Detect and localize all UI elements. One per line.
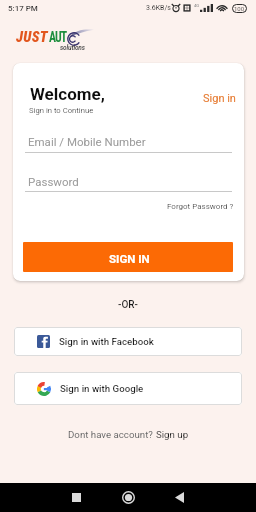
button[interactable]: Sign in	[201, 90, 238, 107]
button[interactable]: Sign in with Facebook	[14, 327, 242, 356]
staticText: SIGN IN	[109, 252, 150, 265]
staticText: Email / Mobile Number	[28, 135, 146, 148]
staticText: solutions	[60, 44, 85, 52]
button[interactable]: Back	[165, 483, 193, 512]
button[interactable]: Sign in with Google	[14, 372, 242, 405]
button[interactable]: Sign up	[156, 429, 189, 440]
button[interactable]: SIGN IN	[23, 242, 233, 272]
staticText: 100	[234, 5, 245, 12]
staticText: 4G	[194, 3, 200, 8]
staticText: 3.6KB/s	[146, 4, 171, 12]
button[interactable]: Recent apps	[62, 483, 90, 512]
staticText: Password	[28, 175, 79, 188]
staticText: Sign in with Google	[60, 383, 144, 394]
button[interactable]: Forgot Password ?	[166, 201, 235, 212]
staticText: -OR-	[118, 299, 138, 311]
staticText: 5:17 PM	[8, 4, 38, 13]
staticText: Dont have account?	[68, 429, 156, 440]
button[interactable]: Home	[114, 483, 142, 512]
staticText: JUST	[16, 29, 49, 46]
staticText: Welcome,	[30, 84, 105, 104]
staticText: Sign in to Continue	[29, 106, 94, 115]
staticText: Sign in with Facebook	[59, 336, 154, 347]
staticText: AUT	[49, 28, 67, 46]
